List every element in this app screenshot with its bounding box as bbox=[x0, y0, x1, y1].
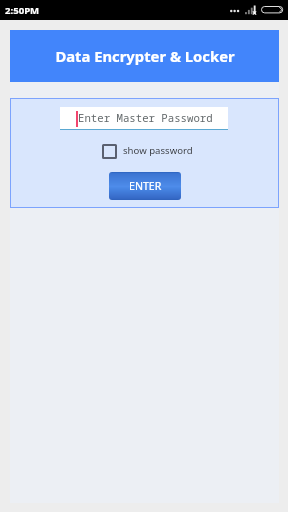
staticText: ENTER bbox=[129, 179, 162, 193]
button[interactable]: show password bbox=[102, 144, 193, 159]
staticText: 2:50PM bbox=[5, 4, 40, 17]
staticText: Enter Master Password bbox=[78, 111, 213, 126]
other: Signal bbox=[245, 5, 257, 15]
button[interactable]: Enter Master Password bbox=[60, 107, 228, 131]
staticText: Data Encrypter & Locker bbox=[55, 46, 235, 66]
other: More bbox=[230, 9, 239, 13]
button[interactable]: ENTER bbox=[109, 172, 181, 200]
button[interactable]: Data Encrypter & Locker bbox=[10, 30, 279, 82]
staticText: show password bbox=[123, 144, 193, 157]
other: Battery bbox=[261, 6, 283, 14]
